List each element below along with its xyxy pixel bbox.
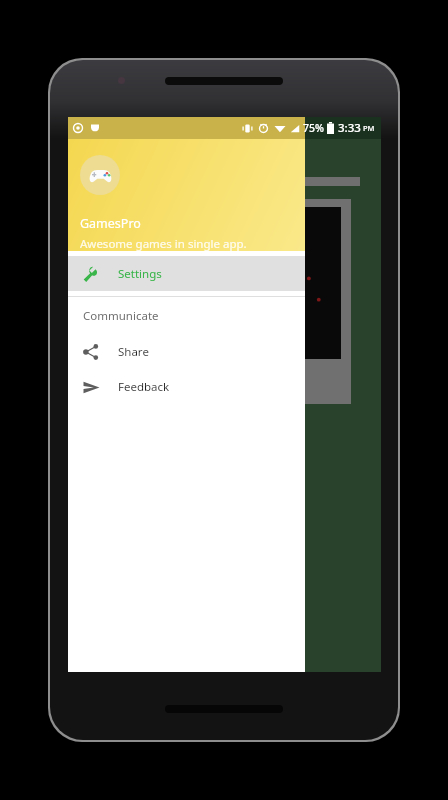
staticText: 75% [303,121,324,135]
button[interactable]: Share [68,334,305,369]
staticText: Share [118,344,149,360]
staticText: GamesPro [80,215,141,232]
other: Feedback [83,379,100,396]
other: Settings [83,266,100,283]
other: Share [83,344,99,360]
staticText: Settings [118,266,162,282]
staticText: Communicate [83,308,159,324]
button[interactable]: Settings [68,256,305,291]
staticText: Awesome games in single app. [80,236,247,251]
staticText: Feedback [118,379,170,395]
button[interactable]: Feedback [68,369,305,404]
staticText: 3:33 [338,120,361,136]
staticText: PM [363,123,375,133]
